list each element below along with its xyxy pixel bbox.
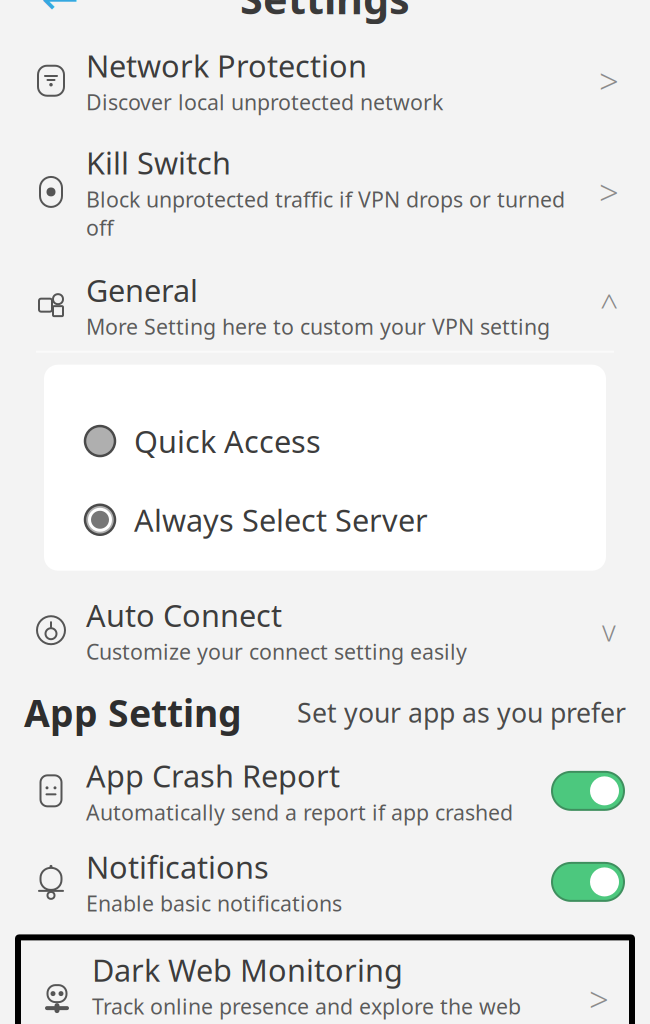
staticText: Customize your connect setting easily xyxy=(86,637,467,666)
staticText: Settings xyxy=(240,0,410,26)
staticText: Discover local unprotected network xyxy=(86,88,443,116)
staticText: Notifications xyxy=(86,846,269,887)
staticText: General xyxy=(86,270,198,310)
staticText: Dark Web Monitoring xyxy=(92,949,403,990)
staticText: ^ xyxy=(600,284,618,326)
button[interactable]: Always Select Server xyxy=(44,489,606,550)
staticText: Auto Connect xyxy=(86,595,282,635)
staticText: Block unprotected traffic if VPN drops o… xyxy=(86,185,565,242)
staticText: App Crash Report xyxy=(86,755,340,796)
staticText: More Setting here to custom your VPN set… xyxy=(86,312,550,341)
staticText: Track online presence and explore the we… xyxy=(92,992,521,1024)
staticText: Automatically send a report if app crash… xyxy=(86,798,513,826)
button[interactable]: General xyxy=(0,262,650,349)
button[interactable]: Dark Web Monitoring xyxy=(18,937,632,1024)
button[interactable]: Notifications xyxy=(0,838,650,925)
staticText: App Setting xyxy=(24,688,242,737)
staticText: ← xyxy=(41,0,79,24)
button[interactable]: Network Protection xyxy=(0,37,650,124)
staticText: v xyxy=(602,611,616,650)
button[interactable]: App Crash Report xyxy=(0,747,650,834)
staticText: Quick Access xyxy=(134,421,321,461)
staticText: Network Protection xyxy=(86,45,367,86)
button[interactable]: Auto Connect xyxy=(0,587,650,674)
button[interactable]: Kill Switch xyxy=(0,134,650,250)
staticText: > xyxy=(589,976,609,1022)
staticText: > xyxy=(599,58,619,104)
staticText: > xyxy=(599,169,619,215)
staticText: Kill Switch xyxy=(86,142,231,183)
staticText: Always Select Server xyxy=(134,499,428,540)
button[interactable]: Back xyxy=(30,0,90,22)
button[interactable]: Quick Access xyxy=(44,411,606,471)
staticText: Set your app as you prefer xyxy=(297,695,626,730)
staticText: Enable basic notifications xyxy=(86,889,342,917)
